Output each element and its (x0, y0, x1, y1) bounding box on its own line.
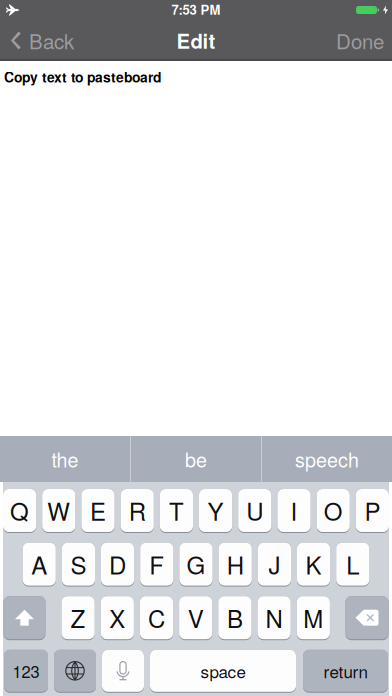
staticText: be (185, 445, 207, 473)
staticText: the (51, 445, 78, 473)
button[interactable]: T (160, 489, 193, 533)
button[interactable]: B (218, 596, 251, 640)
button[interactable]: K (297, 543, 330, 587)
button[interactable]: Z (61, 596, 95, 640)
staticText: H (227, 547, 244, 581)
button[interactable]: H (219, 543, 252, 587)
button[interactable]: Shift (3, 596, 45, 640)
staticText: Copy text to pasteboard (4, 67, 161, 87)
button[interactable]: O (317, 489, 350, 533)
staticText: S (70, 547, 86, 581)
button[interactable]: space (150, 650, 296, 693)
staticText: C (148, 600, 165, 635)
staticText: U (246, 493, 263, 528)
staticText: W (47, 493, 70, 528)
button[interactable]: Back (0, 26, 74, 55)
staticText: R (129, 493, 146, 528)
staticText: speech (295, 445, 359, 473)
button[interactable]: I (277, 489, 311, 533)
button[interactable]: C (140, 596, 173, 640)
button[interactable]: the (0, 436, 130, 482)
button[interactable]: W (42, 489, 75, 533)
staticText: T (169, 493, 184, 528)
button[interactable]: S (62, 543, 95, 587)
staticText: return (323, 659, 367, 683)
button[interactable]: N (257, 596, 291, 640)
button[interactable]: X (101, 596, 134, 640)
button[interactable]: P (356, 489, 389, 533)
staticText: I (290, 493, 297, 528)
button[interactable]: R (121, 489, 154, 533)
staticText: G (186, 547, 205, 581)
button[interactable]: D (101, 543, 134, 587)
button[interactable]: Delete (345, 596, 388, 640)
button[interactable]: F (140, 543, 173, 587)
staticText: X (109, 600, 125, 635)
staticText: Z (71, 600, 86, 635)
staticText: F (149, 547, 164, 581)
staticText: 7:53 PM (171, 0, 220, 19)
staticText: N (266, 600, 283, 635)
staticText: K (306, 547, 322, 581)
staticText: D (109, 547, 126, 581)
button[interactable]: G (179, 543, 213, 587)
staticText: O (324, 493, 343, 528)
button[interactable]: Dictate (102, 650, 144, 693)
staticText: Y (208, 493, 224, 528)
button[interactable]: U (238, 489, 271, 533)
button[interactable]: Q (3, 489, 36, 533)
button[interactable]: V (179, 596, 212, 640)
staticText: V (188, 600, 204, 635)
button[interactable]: Y (199, 489, 232, 533)
staticText: P (364, 493, 380, 528)
button[interactable]: Next keyboard (54, 650, 96, 693)
staticText: Done (336, 26, 384, 55)
button[interactable]: return (303, 650, 388, 693)
staticText: 123 (12, 659, 39, 683)
button[interactable]: J (258, 543, 291, 587)
button[interactable]: be (131, 436, 261, 482)
staticText: B (227, 600, 243, 635)
button[interactable]: L (336, 543, 369, 587)
staticText: A (31, 547, 47, 581)
staticText: space (200, 659, 245, 683)
staticText: E (90, 493, 106, 528)
staticText: L (346, 547, 359, 581)
staticText: Q (10, 493, 29, 528)
staticText: M (303, 600, 323, 635)
button[interactable]: E (81, 489, 115, 533)
staticText: Back (29, 26, 74, 55)
button[interactable]: A (23, 543, 56, 587)
button[interactable]: Done (336, 26, 392, 55)
button[interactable]: 123 (4, 650, 48, 693)
staticText: Edit (176, 26, 215, 55)
button[interactable]: M (297, 596, 330, 640)
staticText: J (268, 547, 280, 581)
button[interactable]: speech (262, 436, 392, 482)
